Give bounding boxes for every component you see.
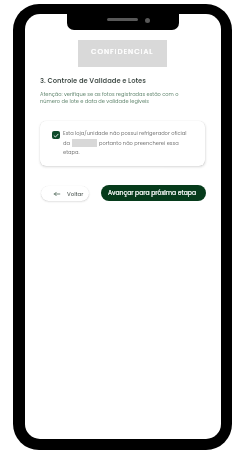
button[interactable]: Voltar	[41, 186, 89, 201]
button[interactable]: Avançar para próxima etapa	[101, 185, 206, 201]
staticText: Avançar para próxima etapa	[108, 189, 196, 197]
staticText: CONFIDENCIAL	[91, 47, 154, 57]
button[interactable]: Marcar opção	[52, 131, 60, 139]
staticText: portanto não preencherei essa	[99, 140, 179, 147]
staticText: Voltar	[67, 190, 84, 198]
staticText: da	[63, 140, 70, 147]
staticText: etapa.	[63, 149, 80, 156]
staticText: 3. Controle de Validade e Lotes	[40, 76, 147, 86]
staticText: Atenção: verifique se as fotos registrad…	[40, 91, 179, 105]
staticText: Esta loja/unidade não possui refrigerado…	[63, 130, 187, 137]
